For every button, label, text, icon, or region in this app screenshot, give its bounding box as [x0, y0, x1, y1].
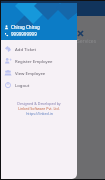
- staticText: Chirag Chirag: [11, 24, 40, 30]
- button[interactable]: View Employee: [1, 67, 77, 79]
- staticText: Register Employee: [15, 58, 53, 64]
- button[interactable]: Add Ticket: [1, 43, 77, 55]
- button[interactable]: Close navigation drawer: [76, 29, 85, 38]
- staticText: Designed & Developed by: [17, 101, 61, 106]
- staticText: 9999999999: [11, 31, 37, 37]
- staticText: Add Ticket: [15, 46, 36, 52]
- staticText: View Employee: [15, 70, 46, 76]
- button[interactable]: Register Employee: [1, 55, 77, 67]
- staticText: https://linked.in: [26, 111, 53, 116]
- staticText: Services: [77, 38, 97, 45]
- button[interactable]: Logout: [1, 79, 77, 91]
- staticText: Logout: [15, 82, 30, 88]
- staticText: Linked Software Pvt. Ltd.: [18, 106, 60, 111]
